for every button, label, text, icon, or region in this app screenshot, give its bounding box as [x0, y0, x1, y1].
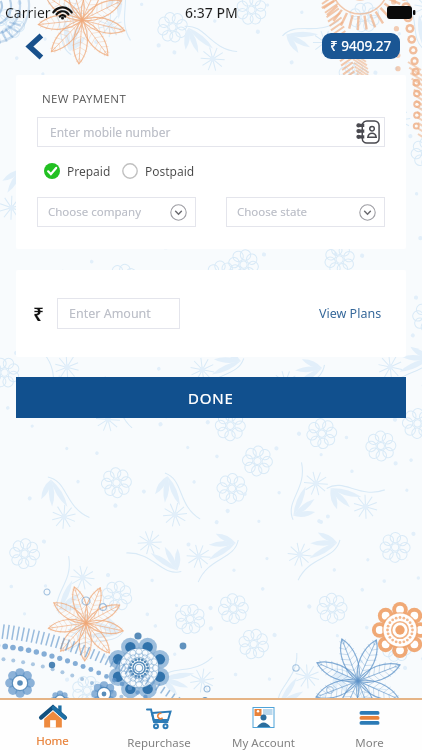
staticText: Home [36, 733, 69, 749]
staticText: Enter Amount [69, 305, 151, 322]
staticText: DONE [188, 388, 234, 408]
staticText: My Account [232, 735, 295, 750]
staticText: Carrier [5, 3, 51, 22]
staticText: View Plans [319, 305, 382, 322]
button[interactable]: Enter Amount [57, 298, 180, 329]
staticText: Repurchase [127, 735, 191, 750]
button[interactable]: Home [0, 700, 105, 749]
staticText: NEW PAYMENT [42, 91, 127, 107]
button[interactable]: Choose company [37, 197, 196, 227]
staticText: 6:37 PM [185, 3, 238, 22]
button[interactable]: ₹ 9409.27 [322, 33, 400, 59]
button[interactable]: DONE [16, 377, 406, 418]
staticText: Postpaid [145, 163, 195, 179]
button[interactable]: Postpaid [122, 163, 195, 179]
staticText: Choose state [237, 204, 308, 220]
staticText: Enter mobile number [50, 124, 171, 140]
button[interactable]: Pick from contacts [357, 120, 381, 144]
button[interactable]: Repurchase [106, 700, 211, 750]
button[interactable]: More [317, 700, 422, 750]
button[interactable]: View Plans [319, 305, 382, 322]
staticText: Choose company [48, 204, 141, 220]
button[interactable]: Prepaid [44, 163, 111, 179]
button[interactable]: Choose state [226, 197, 385, 227]
button[interactable]: Enter mobile number [37, 117, 385, 147]
staticText: More [355, 735, 384, 750]
staticText: Prepaid [67, 163, 111, 179]
button[interactable]: My Account [211, 700, 316, 750]
button[interactable]: Back [17, 28, 53, 64]
staticText: ₹ [33, 301, 44, 327]
staticText: ₹ 9409.27 [330, 37, 392, 55]
